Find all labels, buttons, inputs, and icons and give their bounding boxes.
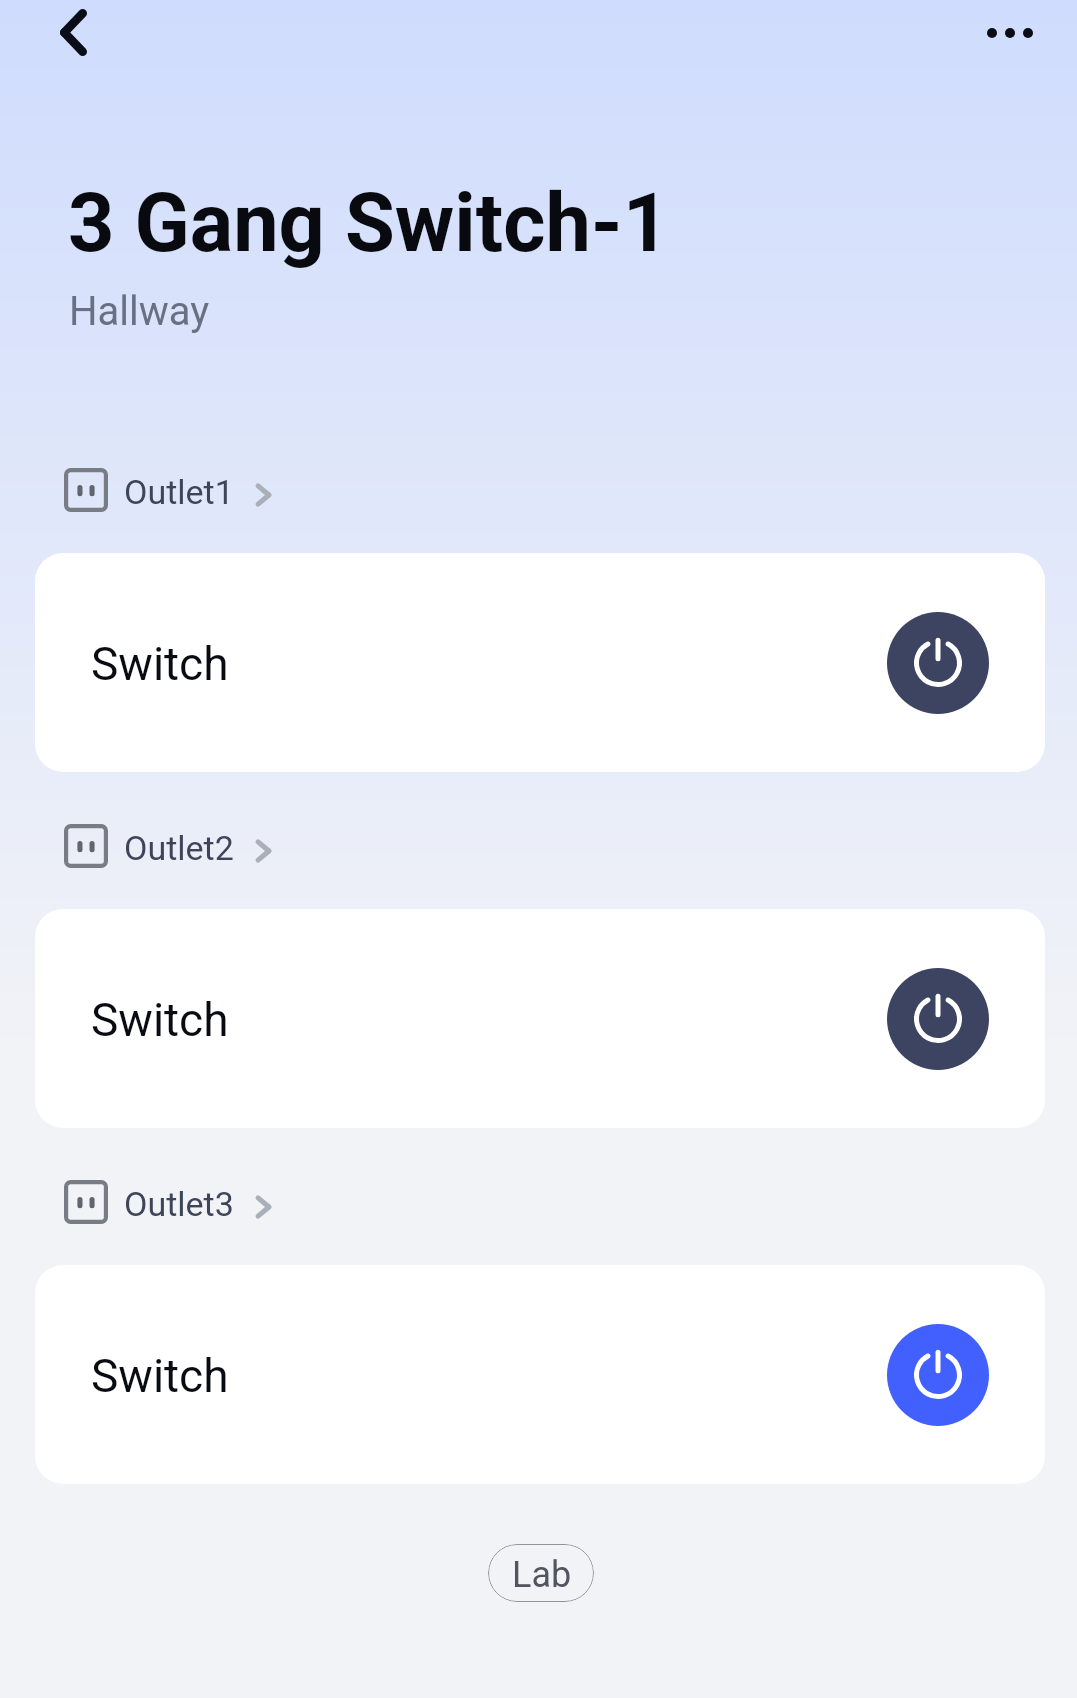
staticText: Switch <box>91 637 229 691</box>
button[interactable]: More options <box>965 0 1055 74</box>
button[interactable]: Switch <box>35 1265 1045 1484</box>
button[interactable]: Power toggle <box>887 1324 989 1426</box>
staticText: 3 Gang Switch-1 <box>68 176 670 271</box>
staticText: Hallway <box>69 288 210 335</box>
button[interactable]: Outlet2 <box>64 824 272 868</box>
button[interactable]: Switch <box>35 553 1045 772</box>
staticText: Outlet3 <box>124 1184 234 1224</box>
button[interactable]: Outlet3 <box>64 1180 272 1224</box>
button[interactable]: Lab <box>488 1544 594 1602</box>
staticText: Switch <box>91 993 229 1047</box>
staticText: Outlet2 <box>124 828 234 868</box>
button[interactable]: Power toggle <box>887 612 989 714</box>
button[interactable]: Switch <box>35 909 1045 1128</box>
button[interactable]: Back <box>25 0 121 72</box>
staticText: Switch <box>91 1349 229 1403</box>
staticText: Outlet1 <box>124 472 234 512</box>
button[interactable]: Power toggle <box>887 968 989 1070</box>
button[interactable]: Outlet1 <box>64 468 272 512</box>
staticText: Lab <box>512 1554 572 1596</box>
